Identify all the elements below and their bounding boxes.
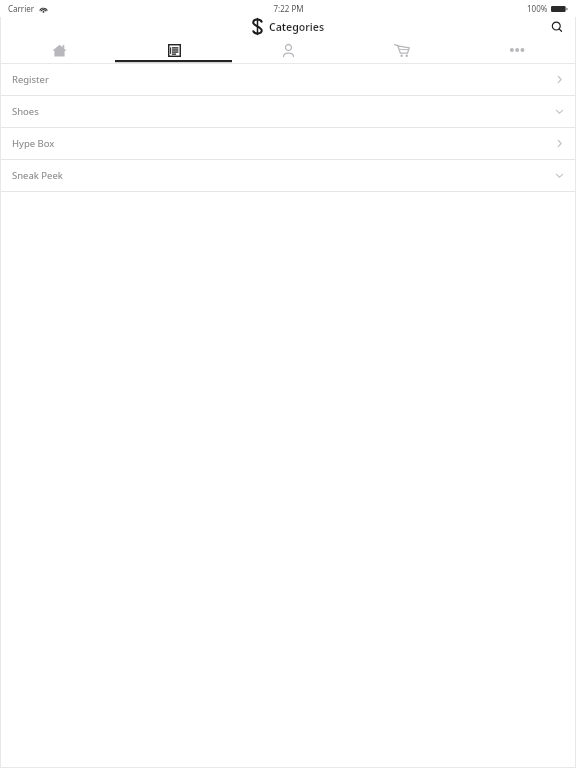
staticText: 100% [527, 3, 548, 14]
button[interactable]: More [462, 36, 572, 64]
staticText: Categories [269, 20, 325, 34]
button[interactable]: Account [233, 36, 343, 64]
button[interactable]: Shoes [0, 96, 576, 127]
button[interactable]: Categories [119, 36, 229, 64]
staticText: Carrier [8, 3, 35, 14]
staticText: Sneak Peek [12, 169, 63, 182]
button[interactable]: Home [4, 36, 114, 64]
button[interactable]: Search [547, 17, 567, 36]
staticText: 7:22 PM [273, 3, 304, 14]
staticText: Register [12, 73, 49, 86]
button[interactable]: Sneak Peek [0, 160, 576, 191]
button[interactable]: Register [0, 64, 576, 95]
staticText: Shoes [12, 105, 39, 118]
button[interactable]: Hype Box [0, 128, 576, 159]
button[interactable]: Cart [347, 36, 457, 64]
staticText: Hype Box [12, 137, 55, 150]
